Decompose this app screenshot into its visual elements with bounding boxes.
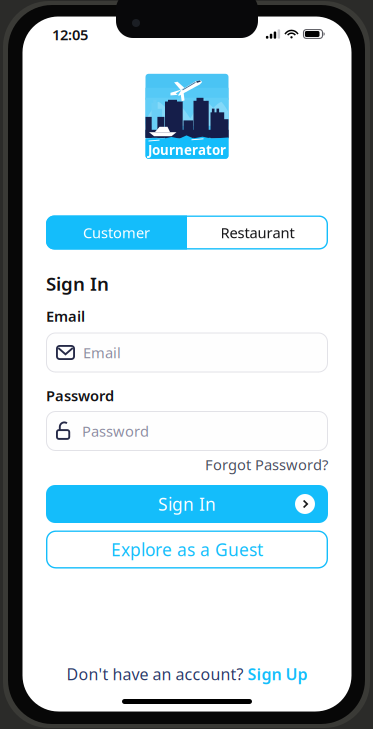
staticText: Sign Up	[247, 663, 307, 685]
staticText: Password	[46, 386, 114, 405]
staticText: Sign In	[46, 271, 109, 296]
staticText: Customer	[83, 223, 150, 242]
staticText: Password	[82, 421, 149, 441]
button[interactable]: Customer	[46, 215, 187, 249]
staticText: Sign In	[158, 492, 216, 515]
staticText: Forgot Password?	[205, 455, 328, 474]
staticText: Email	[46, 306, 85, 326]
button[interactable]: Sign In	[46, 485, 328, 523]
staticText: Email	[83, 343, 121, 362]
button[interactable]: Forgot Password?	[46, 455, 328, 473]
button[interactable]: Explore as a Guest	[46, 530, 328, 568]
staticText: Journerator	[148, 141, 226, 159]
button[interactable]: Restaurant	[187, 215, 328, 249]
staticText: Don't have an account?	[66, 663, 243, 685]
staticText: Restaurant	[220, 223, 294, 242]
button[interactable]: Don't have an account?	[62, 663, 312, 685]
staticText: Explore as a Guest	[111, 538, 263, 561]
staticText: 12:05	[52, 25, 88, 44]
